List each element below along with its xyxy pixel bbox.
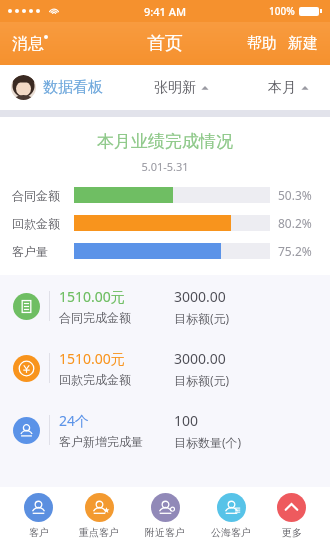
- button[interactable]: 消息: [12, 34, 48, 54]
- button[interactable]: 数据看板: [11, 75, 103, 100]
- button[interactable]: 客户: [22, 493, 55, 539]
- staticText: 数据看板: [43, 78, 103, 97]
- staticText: 消息: [12, 34, 44, 54]
- staticText: 客户: [29, 526, 49, 539]
- staticText: 100%: [269, 4, 295, 18]
- staticText: 客户量: [12, 244, 48, 259]
- staticText: 3000.00: [174, 287, 226, 306]
- staticText: 合同金额: [12, 188, 60, 203]
- staticText: 重点客户: [79, 526, 119, 539]
- button[interactable]: 张明新: [151, 75, 212, 101]
- button[interactable]: 24个: [0, 399, 330, 461]
- button[interactable]: 1510.00元: [0, 275, 330, 337]
- staticText: 客户新增完成量: [59, 434, 143, 449]
- staticText: 公海客户: [211, 526, 251, 539]
- staticText: 24个: [59, 411, 90, 430]
- staticText: 张明新: [154, 79, 196, 97]
- staticText: 首页: [147, 32, 183, 55]
- staticText: 本月: [268, 79, 296, 97]
- staticText: 100: [174, 411, 199, 430]
- staticText: 附近客户: [145, 526, 185, 539]
- staticText: 50.3%: [278, 187, 312, 203]
- staticText: 目标额(元): [174, 372, 230, 388]
- button[interactable]: 更多: [275, 493, 308, 539]
- staticText: 1510.00元: [59, 349, 125, 368]
- staticText: 回款完成金额: [59, 372, 131, 387]
- staticText: 本月业绩完成情况: [0, 131, 330, 152]
- staticText: 帮助: [247, 34, 277, 53]
- staticText: 80.2%: [278, 215, 312, 231]
- staticText: 合同完成金额: [59, 310, 131, 325]
- staticText: 9:41 AM: [144, 4, 187, 19]
- button[interactable]: 本月: [265, 75, 312, 101]
- button[interactable]: 公海客户: [209, 493, 253, 539]
- staticText: 目标数量(个): [174, 434, 242, 450]
- staticText: 5.01-5.31: [0, 159, 330, 174]
- button[interactable]: 1510.00元: [0, 337, 330, 399]
- staticText: 1510.00元: [59, 287, 125, 306]
- staticText: 更多: [282, 526, 302, 539]
- button[interactable]: 新建: [286, 34, 320, 53]
- button[interactable]: 附近客户: [143, 493, 187, 539]
- staticText: 3000.00: [174, 349, 226, 368]
- staticText: 75.2%: [278, 243, 312, 259]
- button[interactable]: 重点客户: [77, 493, 121, 539]
- button[interactable]: 帮助: [245, 34, 279, 53]
- staticText: 回款金额: [12, 216, 60, 231]
- staticText: 目标额(元): [174, 310, 230, 326]
- staticText: 新建: [288, 34, 318, 53]
